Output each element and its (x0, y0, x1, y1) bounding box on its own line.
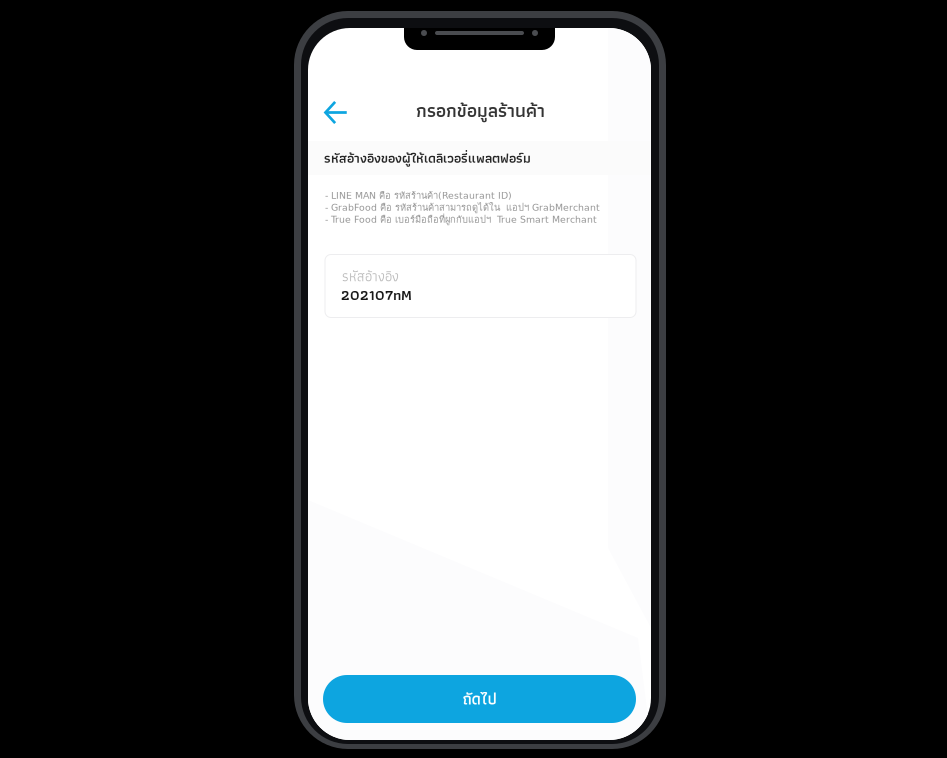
staticText: - GrabFood คือ รหัสร้านค้าสามารถดูได้ใน … (325, 200, 600, 215)
staticText: กรอกข้อมูลร้านค้า (416, 96, 545, 125)
button[interactable]: ถัดไป (323, 675, 636, 723)
staticText: รหัสอ้างอิง (342, 265, 399, 288)
staticText: 202107nM (341, 283, 412, 307)
button[interactable]: Back (312, 90, 360, 134)
staticText: รหัสอ้างอิงของผู้ให้เดลิเวอรี่แพลตฟอร์ม (324, 147, 531, 169)
staticText: ถัดไป (462, 686, 496, 712)
staticText: - True Food คือ เบอร์มือถือที่ผูกกับแอปฯ… (325, 212, 597, 227)
staticText: - LINE MAN คือ รหัสร้านค้า(Restaurant ID… (325, 188, 512, 203)
